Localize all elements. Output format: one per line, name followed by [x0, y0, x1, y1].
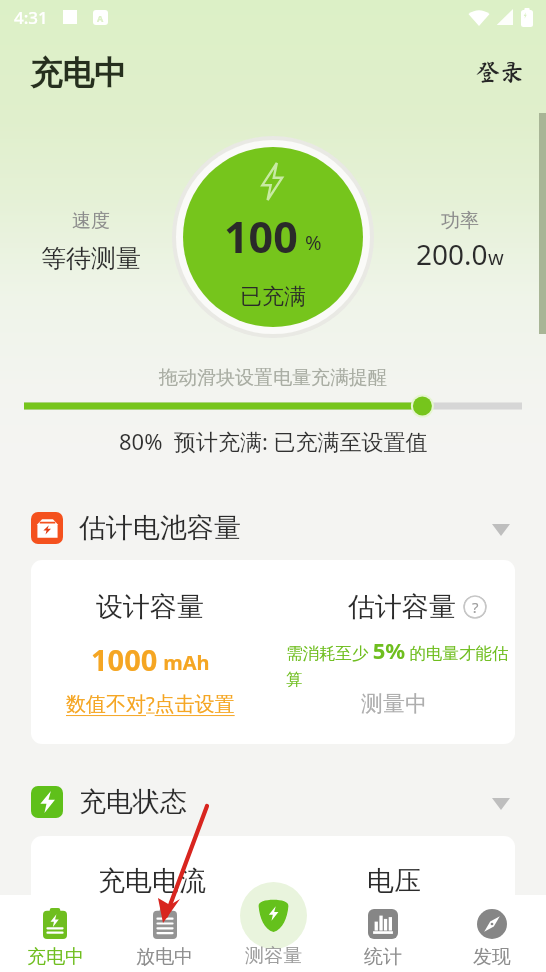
staticText: 速度: [72, 209, 110, 233]
button[interactable]: 充电中: [0, 895, 110, 972]
staticText: 80% 预计充满: 已充满至设置值: [119, 426, 428, 456]
button[interactable]: 发现: [437, 895, 546, 972]
staticText: 功率: [441, 209, 479, 233]
staticText: ?: [472, 597, 479, 617]
staticText: 放电中: [136, 945, 193, 969]
staticText: 等待测量: [41, 243, 141, 274]
staticText: A: [97, 12, 104, 24]
staticText: mAh: [158, 649, 210, 676]
staticText: 登录: [476, 60, 524, 84]
staticText: 需消耗至少 5% 的电量才能估 算: [286, 635, 510, 690]
staticText: 设计容量: [96, 590, 204, 624]
button[interactable]: [0, 392, 546, 420]
staticText: 200.0: [416, 235, 488, 273]
staticText: 发现: [473, 945, 511, 969]
staticText: 测容量: [245, 944, 302, 968]
button[interactable]: 帮助: [463, 595, 487, 619]
staticText: 电压: [367, 864, 421, 898]
staticText: %: [305, 229, 322, 256]
staticText: 充电电流: [98, 864, 206, 898]
staticText: 1000: [91, 640, 158, 679]
button[interactable]: 充电状态: [0, 778, 546, 826]
staticText: 统计: [364, 945, 402, 969]
staticText: 充电中: [30, 53, 126, 93]
button[interactable]: 统计: [328, 895, 437, 972]
button[interactable]: 数值不对?点击设置: [66, 690, 235, 717]
staticText: 估计电池容量: [79, 511, 241, 545]
staticText: 充电状态: [79, 785, 187, 819]
button[interactable]: 放电中: [110, 895, 219, 972]
staticText: w: [488, 244, 504, 271]
staticText: 已充满: [240, 283, 306, 311]
staticText: 测量中: [361, 690, 427, 718]
button[interactable]: 测容量: [218, 875, 328, 968]
button[interactable]: 登录: [467, 52, 533, 92]
staticText: 拖动滑块设置电量充满提醒: [159, 366, 387, 390]
button[interactable]: 估计电池容量: [0, 504, 546, 552]
staticText: 4:31: [14, 6, 48, 29]
staticText: 充电中: [27, 945, 84, 969]
staticText: 100: [224, 207, 298, 266]
staticText: 数值不对?点击设置: [66, 690, 235, 717]
staticText: 估计容量: [348, 590, 456, 624]
